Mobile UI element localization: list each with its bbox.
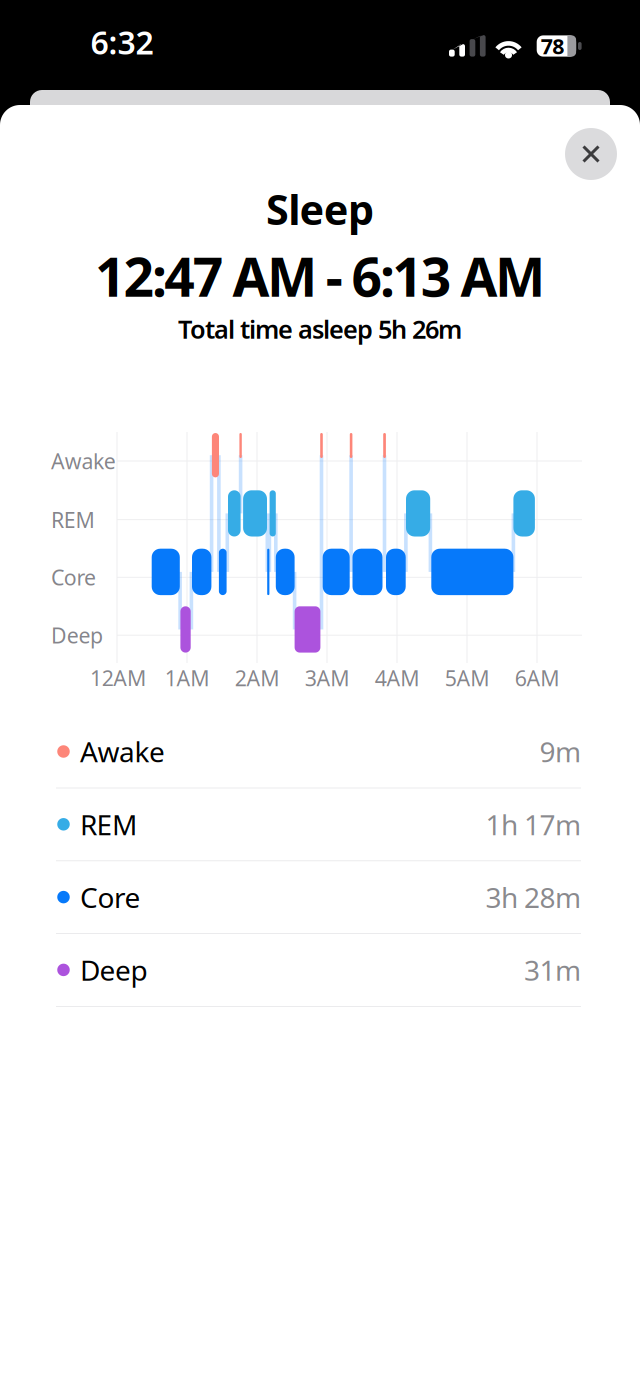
staticText: 3AM [305, 664, 349, 692]
staticText: 9m [539, 733, 581, 770]
staticText: 1AM [165, 664, 209, 692]
staticText: Awake [80, 733, 165, 770]
staticText: Sleep [266, 182, 374, 236]
staticText: 31m [524, 951, 581, 988]
staticText: 12AM [90, 664, 146, 692]
staticText: REM [80, 806, 137, 843]
staticText: 6AM [515, 664, 559, 692]
staticText: 6:32 [90, 21, 153, 63]
staticText: Core [80, 878, 140, 916]
staticText: Total time asleep 5h 26m [178, 312, 462, 346]
staticText: 3h 28m [485, 878, 581, 916]
staticText: 2AM [235, 664, 279, 692]
staticText: Deep [80, 951, 147, 988]
staticText: 78 [541, 32, 564, 60]
staticText: 1h 17m [485, 806, 581, 843]
staticText: Deep [51, 621, 103, 649]
staticText: 5AM [445, 664, 489, 692]
staticText: 4AM [375, 664, 419, 692]
staticText: REM [51, 505, 94, 534]
staticText: Core [51, 563, 96, 591]
button[interactable]: Close [565, 128, 617, 180]
staticText: 12:47 AM - 6:13 AM [95, 241, 545, 311]
staticText: Awake [51, 447, 116, 475]
